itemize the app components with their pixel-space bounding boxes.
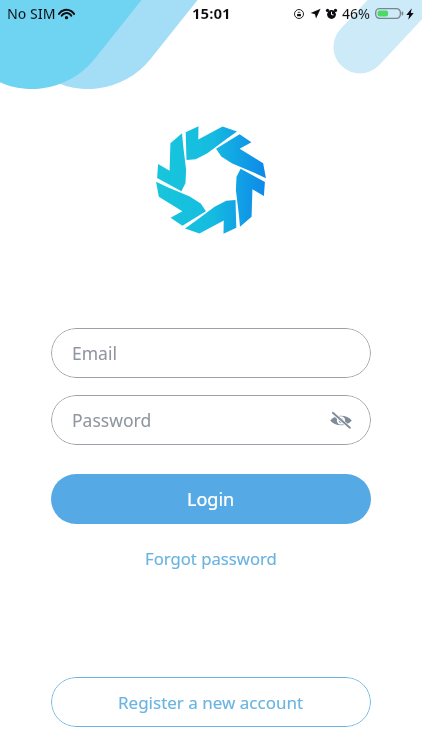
button[interactable]: Register a new account bbox=[51, 677, 371, 727]
button[interactable]: Show password bbox=[325, 404, 357, 436]
button[interactable]: Email bbox=[51, 328, 371, 378]
staticText: Login bbox=[187, 487, 235, 512]
button[interactable]: Login bbox=[51, 474, 371, 524]
staticText: Password bbox=[72, 408, 152, 432]
staticText: Forgot password bbox=[145, 547, 277, 570]
staticText: Register a new account bbox=[118, 691, 304, 714]
staticText: 46% bbox=[342, 4, 370, 23]
staticText: No SIM bbox=[7, 4, 56, 23]
button[interactable]: Password bbox=[51, 395, 371, 445]
button[interactable]: Forgot password bbox=[131, 544, 291, 572]
staticText: Email bbox=[72, 341, 117, 365]
staticText: 15:01 bbox=[192, 3, 231, 23]
